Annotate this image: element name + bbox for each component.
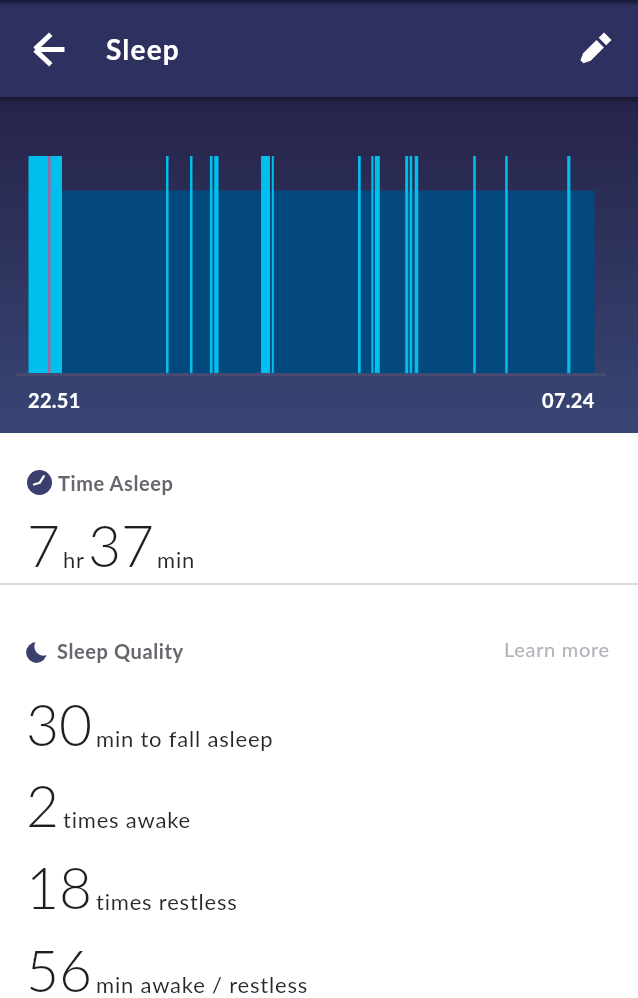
staticText: 18 [26,853,93,921]
staticText: Sleep [106,32,180,66]
staticText: Time Asleep [58,471,174,495]
button[interactable] [572,27,616,71]
staticText: 22.51 [28,388,81,412]
staticText: min awake / restless [96,971,309,997]
staticText: min [157,546,196,572]
staticText: hr [63,546,85,572]
staticText: 37 [88,511,155,579]
button[interactable]: Learn more [504,637,610,661]
staticText: 30 [26,690,93,758]
staticText: Sleep Quality [57,639,184,663]
staticText: times awake [63,806,191,832]
staticText: times restless [96,888,238,914]
staticText: 2 [26,771,60,839]
staticText: 07.24 [542,388,595,412]
staticText: 56 [26,936,93,998]
staticText: 7 [27,511,61,579]
button[interactable]: Sleep Quality [26,639,184,663]
staticText: min to fall asleep [96,725,274,751]
button[interactable]: Time Asleep [27,470,174,495]
button[interactable] [28,27,72,71]
